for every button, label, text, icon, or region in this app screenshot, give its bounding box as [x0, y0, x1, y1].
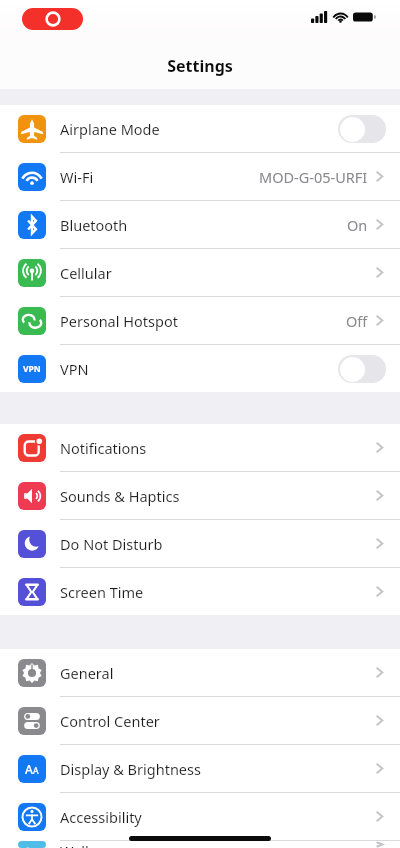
staticText: Off — [346, 311, 368, 331]
staticText: VPN — [60, 359, 338, 379]
staticText: Control Center — [60, 711, 375, 731]
button[interactable]: Airplane Mode toggle — [338, 115, 386, 143]
staticText: Personal Hotspot — [60, 311, 346, 331]
button[interactable]: Bluetooth — [0, 201, 400, 248]
button[interactable]: Wi-Fi — [0, 153, 400, 200]
staticText: On — [347, 215, 368, 235]
button[interactable]: VPN toggle — [338, 355, 386, 383]
button[interactable]: Notifications — [0, 424, 400, 471]
staticText: Bluetooth — [60, 215, 347, 235]
staticText: MOD-G-05-URFI — [259, 167, 368, 187]
button[interactable]: Control Center — [0, 697, 400, 744]
staticText: Wi-Fi — [60, 167, 259, 187]
button[interactable]: Screen recording active — [22, 8, 83, 30]
button[interactable]: Sounds & Haptics — [0, 472, 400, 519]
staticText: Notifications — [60, 438, 375, 458]
staticText: Accessibility — [60, 807, 375, 827]
button[interactable]: Accessibility — [0, 793, 400, 840]
button[interactable]: Airplane Mode — [0, 105, 400, 152]
staticText: Sounds & Haptics — [60, 486, 375, 506]
staticText: A — [25, 761, 33, 777]
button[interactable]: A — [0, 745, 400, 792]
staticText: Display & Brightness — [60, 759, 375, 779]
staticText: VPN — [23, 363, 41, 375]
staticText: Cellular — [60, 263, 375, 283]
staticText: Airplane Mode — [60, 119, 338, 139]
button[interactable]: VPN — [0, 345, 400, 392]
staticText: Wallpaper — [60, 841, 375, 848]
button[interactable]: Screen Time — [0, 568, 400, 615]
staticText: A — [33, 765, 39, 777]
button[interactable]: Personal Hotspot — [0, 297, 400, 344]
button[interactable]: Wallpaper — [0, 841, 400, 848]
staticText: Do Not Disturb — [60, 534, 375, 554]
button[interactable]: Cellular — [0, 249, 400, 296]
staticText: General — [60, 663, 375, 683]
button[interactable]: Do Not Disturb — [0, 520, 400, 567]
staticText: Settings — [167, 55, 233, 77]
staticText: Screen Time — [60, 582, 375, 602]
button[interactable]: General — [0, 649, 400, 696]
